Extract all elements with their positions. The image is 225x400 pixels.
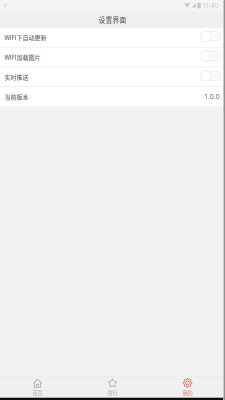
button[interactable]: 实时推送 (0, 67, 225, 86)
staticText: 设置界面 (98, 15, 126, 24)
staticText: 当前版本 (4, 92, 28, 101)
staticText: 首页 (32, 389, 42, 396)
button[interactable]: 首页 (0, 377, 75, 398)
staticText: 排行 (107, 389, 117, 396)
staticText: WIFI加载图片 (4, 53, 40, 62)
staticText: 我的 (182, 389, 192, 396)
button[interactable]: WIFI下自动更新 (0, 28, 225, 47)
button[interactable]: 我的 (150, 377, 225, 398)
button[interactable]: WIFI加载图片 (0, 48, 225, 67)
staticText: 1.0.0 (204, 93, 219, 101)
button[interactable]: 当前版本 (0, 87, 225, 106)
staticText: 实时推送 (4, 73, 28, 81)
button[interactable]: 排行 (75, 377, 150, 398)
staticText: 11:40 (202, 1, 218, 10)
staticText: WIFI下自动更新 (4, 33, 46, 42)
